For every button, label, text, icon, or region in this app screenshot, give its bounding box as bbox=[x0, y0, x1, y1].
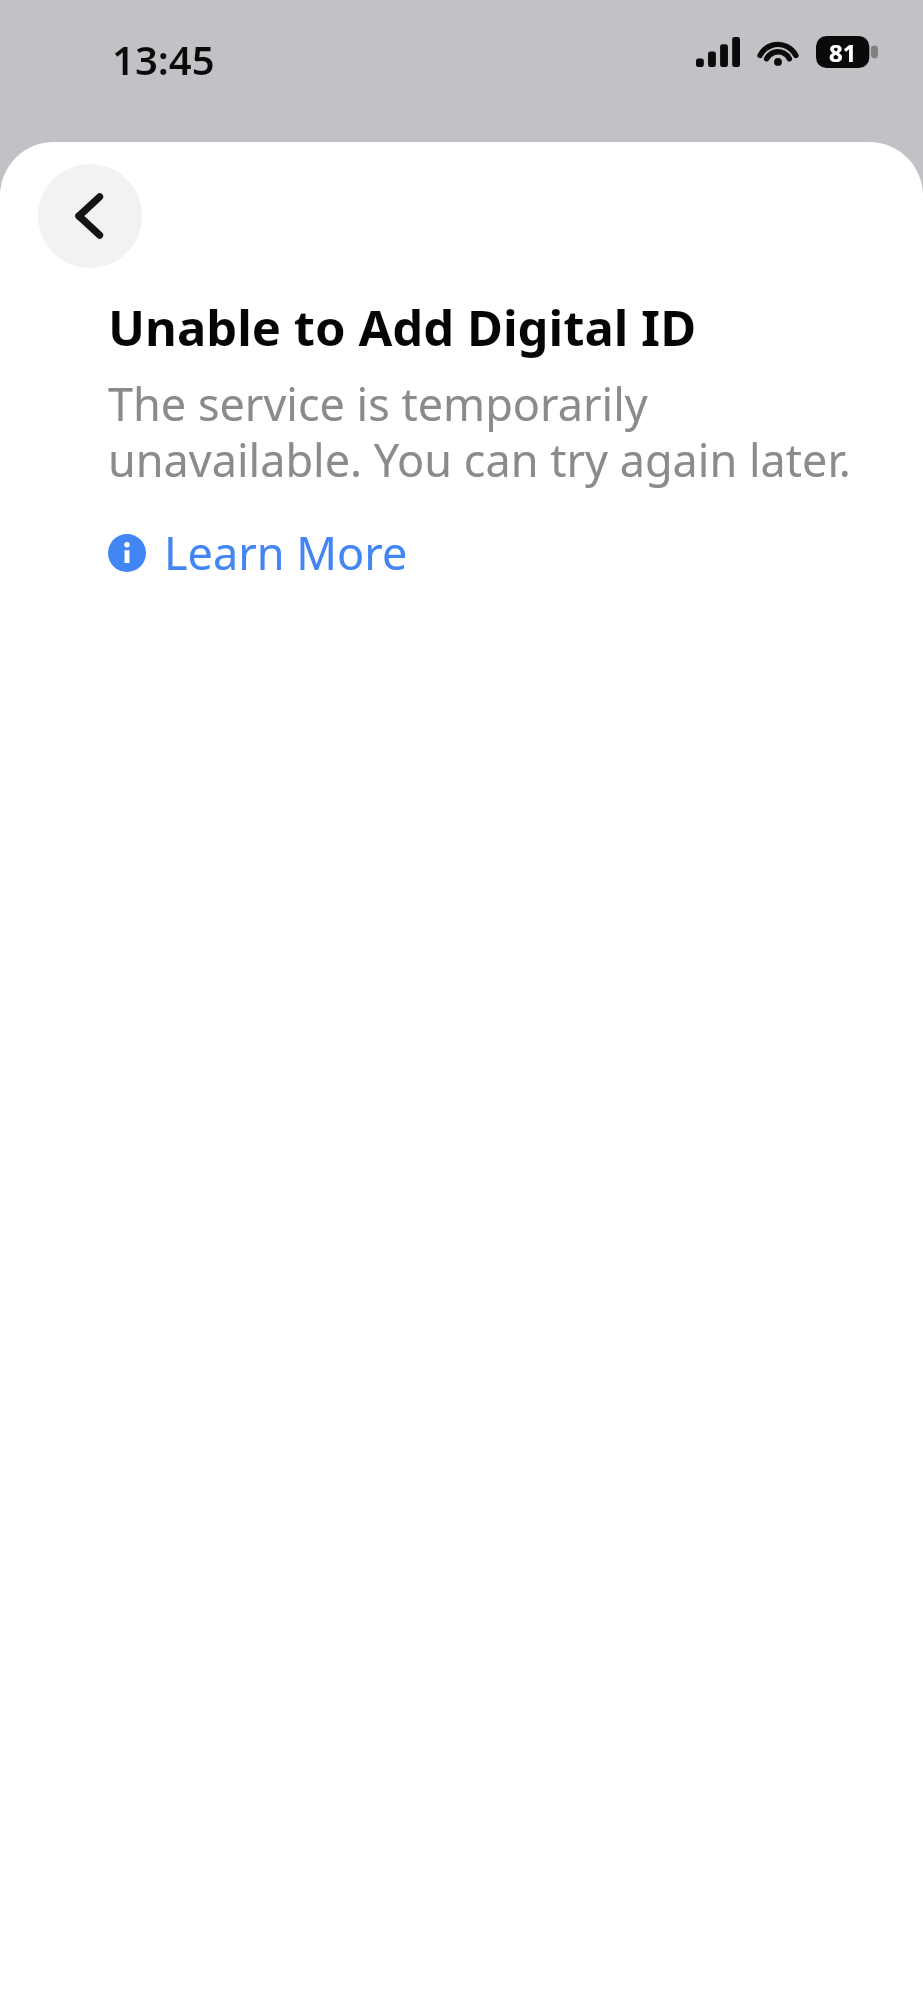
staticText: 13:45 bbox=[112, 32, 215, 86]
staticText: The service is temporarily unavailable. … bbox=[108, 373, 863, 490]
button[interactable]: Learn More bbox=[108, 522, 408, 583]
other: Wi-Fi bbox=[757, 37, 799, 67]
other: Cellular signal bbox=[696, 37, 740, 67]
staticText: 81 bbox=[829, 36, 857, 68]
staticText: Unable to Add Digital ID bbox=[108, 294, 697, 361]
button[interactable]: Back bbox=[38, 164, 142, 268]
other: Battery 81 percent bbox=[816, 36, 878, 68]
staticText: Learn More bbox=[164, 522, 408, 583]
